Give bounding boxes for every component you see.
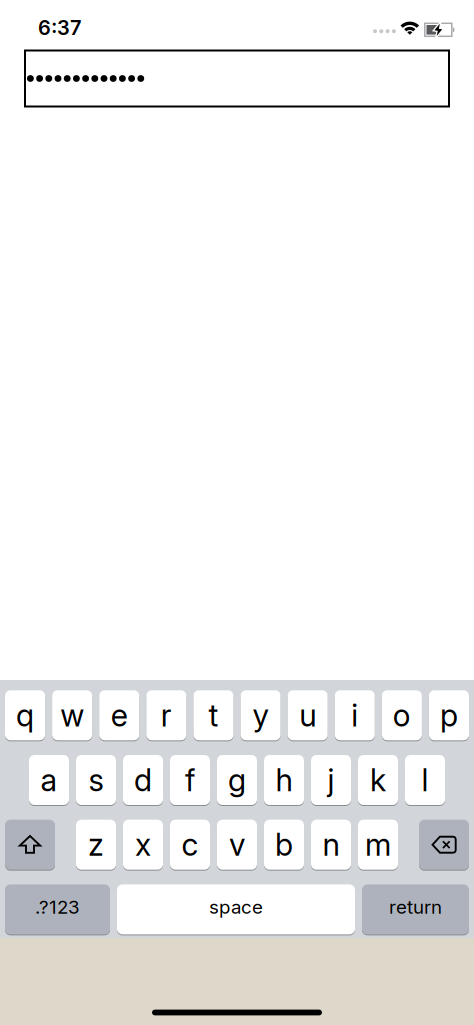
button[interactable]: b — [264, 820, 304, 870]
staticText: z — [88, 827, 104, 863]
button[interactable]: z — [76, 820, 116, 870]
button[interactable]: n — [311, 820, 351, 870]
button[interactable]: o — [382, 690, 422, 740]
staticText: t — [208, 697, 218, 733]
staticText: j — [327, 762, 334, 798]
staticText: w — [60, 697, 84, 733]
button[interactable]: d — [123, 755, 163, 805]
staticText: e — [111, 697, 128, 733]
button[interactable]: v — [217, 820, 257, 870]
button[interactable]: space — [117, 884, 355, 934]
staticText: c — [181, 827, 198, 863]
staticText: y — [252, 697, 268, 733]
button[interactable]: f — [170, 755, 210, 805]
button[interactable]: y — [240, 690, 281, 740]
button[interactable]: m — [358, 820, 398, 870]
button[interactable]: r — [146, 690, 186, 740]
button[interactable]: Delete — [419, 820, 469, 870]
staticText: g — [228, 762, 246, 798]
button[interactable]: t — [193, 690, 233, 740]
staticText: u — [299, 697, 316, 733]
staticText: m — [365, 827, 391, 863]
staticText: .?123 — [35, 896, 80, 918]
staticText: n — [322, 827, 339, 863]
staticText: i — [351, 697, 358, 733]
button[interactable]: k — [358, 755, 398, 805]
staticText: r — [161, 697, 172, 733]
staticText: f — [185, 762, 195, 798]
button[interactable]: x — [123, 820, 163, 870]
button[interactable]: q — [5, 690, 45, 740]
button[interactable]: a — [29, 755, 69, 805]
button[interactable]: Password — [25, 50, 449, 106]
button[interactable]: s — [76, 755, 116, 805]
button[interactable]: Shift — [5, 820, 55, 870]
staticText: x — [135, 827, 151, 863]
button[interactable]: e — [99, 690, 139, 740]
staticText: k — [370, 762, 386, 798]
staticText: d — [134, 762, 152, 798]
staticText: 6:37 — [38, 16, 81, 40]
staticText: space — [209, 896, 263, 918]
button[interactable]: j — [311, 755, 351, 805]
button[interactable]: Numbers — [5, 884, 110, 934]
button[interactable]: u — [288, 690, 328, 740]
staticText: s — [88, 762, 103, 798]
staticText: a — [40, 762, 57, 798]
staticText: b — [275, 827, 293, 863]
button[interactable]: l — [405, 755, 445, 805]
staticText: p — [440, 697, 458, 733]
button[interactable]: i — [335, 690, 375, 740]
button[interactable]: g — [217, 755, 257, 805]
staticText: q — [16, 697, 34, 733]
button[interactable]: p — [429, 690, 469, 740]
button[interactable]: w — [52, 690, 92, 740]
button[interactable]: c — [170, 820, 210, 870]
staticText: return — [389, 896, 442, 918]
button[interactable]: h — [264, 755, 304, 805]
staticText: o — [393, 697, 411, 733]
staticText: l — [421, 762, 428, 798]
staticText: h — [275, 762, 292, 798]
staticText: v — [229, 827, 245, 863]
button[interactable]: Return — [362, 884, 469, 934]
